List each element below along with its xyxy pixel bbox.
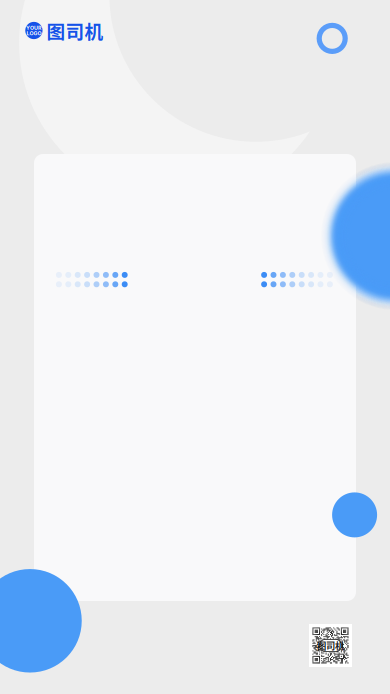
staticText: LOGO: [26, 30, 41, 36]
button[interactable]: YOUR: [25, 17, 104, 44]
staticText: YOUR: [26, 24, 42, 31]
button[interactable]: Decorative ring: [314, 20, 350, 56]
staticText: 图司机: [47, 17, 104, 44]
staticText: 图司机: [317, 639, 344, 652]
button[interactable]: QR code: [309, 624, 352, 667]
